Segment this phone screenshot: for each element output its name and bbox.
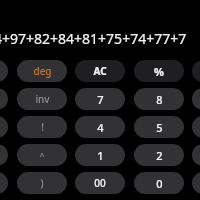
- button[interactable]: 0: [134, 172, 184, 194]
- button[interactable]: 5: [134, 116, 184, 138]
- button[interactable]: AC: [75, 60, 125, 82]
- button[interactable]: (: [0, 172, 8, 194]
- button[interactable]: cos: [0, 88, 8, 110]
- staticText: 2: [156, 148, 163, 163]
- staticText: 1: [97, 148, 104, 163]
- staticText: 4+97+82+84+81+75+74+77+76+67+: [0, 29, 194, 47]
- staticText: 00: [94, 176, 106, 190]
- staticText: inv: [35, 92, 50, 106]
- button[interactable]: inv: [17, 88, 67, 110]
- button[interactable]: 4: [75, 116, 125, 138]
- staticText: !: [41, 120, 44, 134]
- staticText: 7: [97, 92, 104, 107]
- button[interactable]: .: [192, 172, 200, 194]
- staticText: 5: [156, 120, 163, 135]
- button[interactable]: 6: [192, 116, 200, 138]
- button[interactable]: 00: [75, 172, 125, 194]
- staticText: 8: [156, 92, 163, 107]
- button[interactable]: tan: [0, 116, 8, 138]
- button[interactable]: ln: [0, 144, 8, 166]
- button[interactable]: deg: [17, 60, 67, 82]
- button[interactable]: !: [17, 116, 67, 138]
- staticText: 0: [156, 176, 163, 191]
- button[interactable]: 2: [134, 144, 184, 166]
- button[interactable]: ): [17, 172, 67, 194]
- button[interactable]: 8: [134, 88, 184, 110]
- button[interactable]: %: [134, 60, 184, 82]
- button[interactable]: 7: [75, 88, 125, 110]
- staticText: deg: [33, 64, 52, 78]
- button[interactable]: 3: [192, 144, 200, 166]
- staticText: AC: [93, 64, 107, 78]
- button[interactable]: 9: [192, 88, 200, 110]
- staticText: 4: [97, 120, 104, 135]
- button[interactable]: sin: [0, 60, 8, 82]
- staticText: ^: [39, 149, 45, 161]
- button[interactable]: ÷: [192, 60, 200, 82]
- staticText: %: [154, 64, 164, 79]
- staticText: ): [40, 176, 44, 190]
- button[interactable]: ^: [17, 144, 67, 166]
- button[interactable]: 1: [75, 144, 125, 166]
